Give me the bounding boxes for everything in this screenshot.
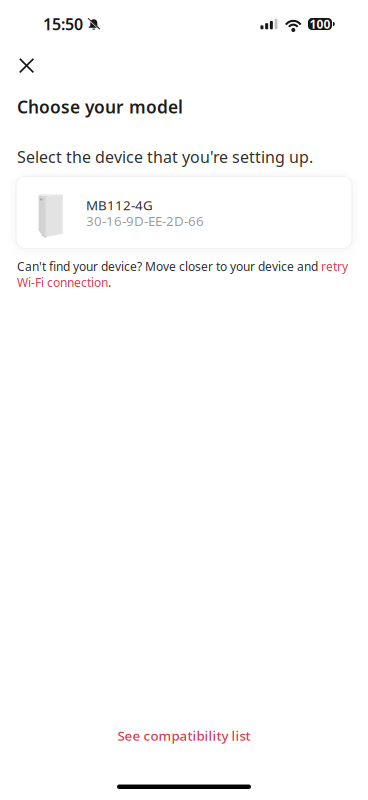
staticText: 100 (309, 16, 330, 32)
staticText: Wi-Fi connection (17, 274, 108, 290)
staticText: retry (321, 258, 348, 274)
staticText: See compatibility list (117, 727, 250, 744)
button[interactable]: Wi-Fi connection (17, 274, 108, 290)
staticText: . (108, 274, 111, 290)
button[interactable]: retry (321, 258, 348, 274)
button[interactable]: See compatibility list (0, 719, 368, 752)
staticText: Choose your model (17, 95, 183, 118)
staticText: 15:50 (43, 13, 83, 35)
button[interactable]: Close (0, 46, 368, 83)
staticText: 30-16-9D-EE-2D-66 (86, 212, 204, 230)
staticText: Can't find your device? Move closer to y… (17, 258, 321, 274)
staticText: Select the device that you're setting up… (17, 146, 313, 167)
button[interactable]: MB112-4G (0, 176, 368, 248)
staticText: MB112-4G (86, 196, 153, 214)
